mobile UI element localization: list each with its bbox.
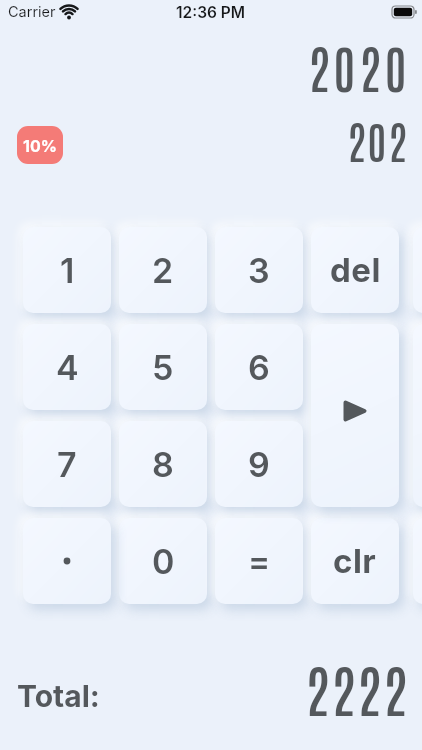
staticText: 9: [248, 444, 270, 485]
button[interactable]: 10%: [17, 126, 63, 164]
staticText: 5: [152, 347, 174, 388]
button[interactable]: clr: [311, 518, 399, 604]
staticText: 0: [152, 541, 175, 582]
button[interactable]: 2: [119, 227, 207, 313]
staticText: 1: [60, 250, 75, 291]
button[interactable]: 1: [23, 227, 111, 313]
button[interactable]: 4: [23, 324, 111, 410]
button[interactable]: 7: [23, 421, 111, 507]
button[interactable]: 3: [215, 227, 303, 313]
staticText: Carrier: [8, 3, 56, 21]
staticText: 12:36 PM: [176, 3, 246, 22]
staticText: 202: [347, 111, 409, 168]
button[interactable]: 6: [215, 324, 303, 410]
staticText: clr: [333, 541, 377, 581]
staticText: 8: [152, 444, 174, 485]
button[interactable]: =: [215, 518, 303, 604]
staticText: 2: [152, 250, 174, 291]
staticText: 10%: [23, 136, 57, 155]
staticText: 4: [56, 347, 79, 388]
staticText: Total:: [17, 678, 100, 714]
button[interactable]: [311, 324, 399, 507]
staticText: 3: [248, 250, 270, 291]
button[interactable]: 0: [119, 518, 207, 604]
staticText: =: [248, 541, 271, 581]
staticText: 2222: [305, 650, 409, 724]
staticText: 2020: [308, 33, 411, 99]
button[interactable]: 8: [119, 421, 207, 507]
button[interactable]: del: [311, 227, 399, 313]
button[interactable]: [23, 518, 111, 604]
staticText: 7: [57, 444, 77, 485]
button[interactable]: 5: [119, 324, 207, 410]
staticText: del: [330, 250, 381, 290]
button[interactable]: 9: [215, 421, 303, 507]
staticText: 6: [248, 347, 270, 388]
